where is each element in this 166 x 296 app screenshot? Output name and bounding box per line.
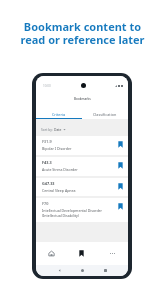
button[interactable]: More options	[97, 242, 128, 265]
button[interactable]: G47.33	[36, 178, 128, 196]
button[interactable]: F31.9	[36, 136, 128, 155]
button[interactable]: Criteria	[36, 103, 82, 119]
staticText: 10:00	[43, 84, 51, 88]
button[interactable]: F43.3	[36, 157, 128, 176]
staticText: Intellectual Developmental Disorder (Int…	[42, 208, 103, 218]
button[interactable]: Bookmarks	[66, 242, 97, 265]
staticText: Sort by:	[41, 127, 53, 131]
staticText: Classification	[93, 112, 117, 117]
button[interactable]: Home	[36, 242, 66, 265]
button[interactable]: F70	[36, 198, 128, 222]
staticText: Bookmarks	[74, 97, 91, 101]
button[interactable]: Classification	[82, 103, 128, 119]
staticText: Bipolar I Disorder	[42, 146, 72, 151]
staticText: F70	[42, 201, 49, 206]
staticText: Acute Stress Disorder	[42, 167, 78, 172]
staticText: Date	[54, 127, 62, 131]
staticText: Central Sleep Apnea	[42, 188, 76, 193]
staticText: G47.33	[42, 181, 55, 186]
staticText: F31.9	[42, 139, 52, 144]
staticText: F43.3	[42, 160, 52, 165]
staticText: Bookmark content to read or reference la…	[20, 19, 145, 47]
staticText: Criteria	[52, 112, 66, 117]
